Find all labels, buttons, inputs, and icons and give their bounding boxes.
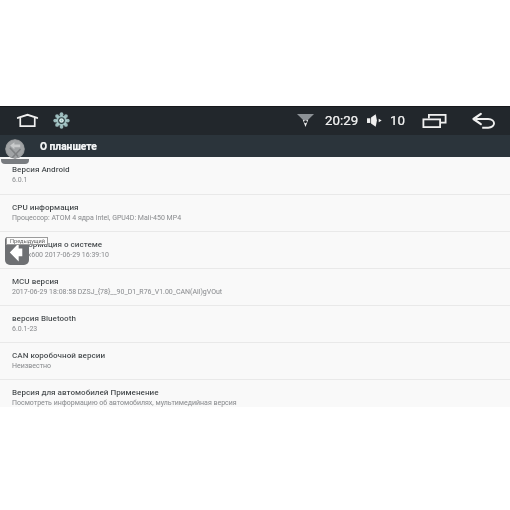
button[interactable]: MCU версия bbox=[0, 269, 510, 305]
staticText: MCU версия bbox=[12, 276, 59, 285]
button[interactable]: Back bbox=[473, 106, 496, 135]
staticText: 2017-06-29 18:08:58 DZSJ_{78}__90_D1_R76… bbox=[12, 288, 223, 296]
staticText: Информация о системе bbox=[12, 239, 103, 248]
button[interactable]: CAN коробочной версии bbox=[0, 343, 510, 379]
button[interactable]: Recent apps bbox=[422, 106, 447, 135]
button[interactable]: Back bbox=[5, 139, 25, 159]
staticText: CAN коробочной версии bbox=[12, 350, 106, 359]
button[interactable]: Previous bbox=[5, 237, 29, 265]
staticText: Неизвестно bbox=[12, 362, 52, 370]
staticText: Процессор: ATOM 4 ядра Intel, GPU4D: Mal… bbox=[12, 214, 182, 222]
button[interactable]: Информация о системе bbox=[0, 232, 510, 268]
staticText: Версия для автомобилей Применение bbox=[12, 387, 159, 396]
button[interactable]: CPU информация bbox=[0, 195, 510, 231]
button[interactable]: Settings bbox=[53, 106, 69, 135]
button[interactable]: Volume bbox=[367, 106, 382, 135]
staticText: 6.0.1 bbox=[12, 176, 28, 184]
button[interactable]: Home bbox=[15, 106, 39, 135]
button[interactable]: версия Bluetooth bbox=[0, 306, 510, 342]
button[interactable]: Wi-Fi bbox=[297, 106, 314, 135]
staticText: 6.0.1-23 bbox=[12, 325, 38, 333]
staticText: Версия Android bbox=[12, 164, 70, 173]
staticText: 10 bbox=[390, 113, 405, 129]
staticText: Предыдущий bbox=[10, 238, 45, 245]
staticText: 1024x600 2017-06-29 16:39:10 bbox=[12, 251, 109, 259]
button[interactable]: Версия Android bbox=[0, 157, 510, 194]
button[interactable]: Версия для автомобилей Применение bbox=[0, 380, 510, 407]
staticText: версия Bluetooth bbox=[12, 313, 76, 322]
staticText: Посмотреть информацию об автомобилях, му… bbox=[12, 399, 237, 407]
staticText: О планшете bbox=[40, 141, 97, 153]
staticText: 20:29 bbox=[325, 113, 359, 129]
staticText: CPU информация bbox=[12, 202, 79, 211]
